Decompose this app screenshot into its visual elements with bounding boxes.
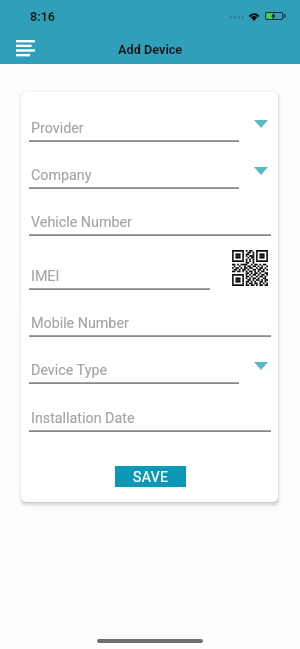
button[interactable]: Open Company dropdown bbox=[254, 167, 268, 181]
staticText: Vehicle Number bbox=[31, 214, 132, 231]
button[interactable]: Company bbox=[29, 161, 239, 189]
staticText: Add Device bbox=[118, 42, 183, 57]
staticText: SAVE bbox=[133, 469, 169, 485]
button[interactable]: Device Type bbox=[29, 356, 239, 384]
staticText: 8:16 bbox=[30, 9, 56, 24]
button[interactable]: Installation Date bbox=[29, 404, 271, 432]
button[interactable]: Provider bbox=[29, 114, 239, 142]
staticText: IMEI bbox=[31, 268, 60, 285]
button[interactable]: Vehicle Number bbox=[29, 208, 271, 236]
button[interactable]: Menu bbox=[9, 32, 41, 64]
staticText: Provider bbox=[31, 120, 84, 137]
staticText: Installation Date bbox=[31, 410, 135, 427]
button[interactable]: Open Provider dropdown bbox=[254, 120, 268, 134]
button[interactable]: IMEI bbox=[29, 262, 210, 290]
button[interactable]: SAVE bbox=[115, 466, 186, 487]
button[interactable]: Open Device Type dropdown bbox=[254, 362, 268, 376]
button[interactable]: Scan QR code bbox=[232, 250, 268, 286]
staticText: Mobile Number bbox=[31, 315, 129, 332]
button[interactable]: Mobile Number bbox=[29, 309, 271, 337]
staticText: Device Type bbox=[31, 362, 108, 379]
staticText: Company bbox=[31, 167, 92, 184]
